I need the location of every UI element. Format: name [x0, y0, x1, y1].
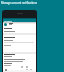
staticText: Manage account notifications	[1, 1, 37, 5]
staticText: Settings	[4, 20, 12, 23]
button[interactable]	[3, 54, 36, 59]
button[interactable]	[3, 28, 36, 33]
button[interactable]	[3, 22, 36, 28]
button[interactable]: Settings	[3, 19, 36, 22]
button[interactable]	[3, 63, 36, 67]
button[interactable]	[3, 36, 36, 41]
